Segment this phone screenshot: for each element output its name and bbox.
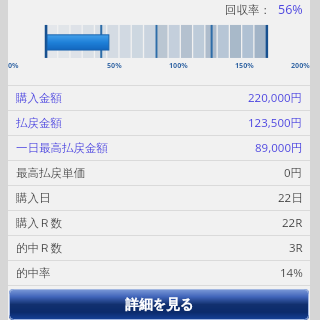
staticText: 220,000円: [248, 90, 303, 106]
button[interactable]: 払戻金額: [8, 111, 310, 135]
staticText: 89,000円: [255, 140, 303, 156]
staticText: 0円: [284, 165, 303, 181]
staticText: 50%: [107, 60, 122, 70]
staticText: 払戻金額: [16, 116, 62, 130]
staticText: 詳細を見る: [125, 296, 194, 313]
button[interactable]: 最高払戻単価: [8, 161, 310, 185]
staticText: 回収率：: [225, 3, 271, 17]
staticText: 最高払戻単価: [16, 166, 85, 180]
button[interactable]: 一日最高払戻金額: [8, 136, 310, 160]
staticText: 購入日: [16, 191, 51, 205]
staticText: 22R: [282, 215, 303, 231]
staticText: 一日最高払戻金額: [16, 141, 108, 155]
button[interactable]: 購入Ｒ数: [8, 211, 310, 235]
staticText: 150%: [235, 60, 254, 70]
staticText: 14%: [280, 265, 303, 281]
staticText: 3R: [289, 240, 303, 256]
staticText: 的中Ｒ数: [16, 241, 62, 255]
button[interactable]: 的中Ｒ数: [8, 236, 310, 260]
staticText: 22日: [278, 190, 303, 206]
button[interactable]: 購入日: [8, 186, 310, 210]
staticText: 100%: [169, 60, 188, 70]
button[interactable]: 購入金額: [8, 86, 310, 110]
staticText: 56%: [278, 1, 303, 18]
staticText: 0%: [8, 60, 19, 70]
staticText: 200%: [291, 60, 310, 70]
staticText: 的中率: [16, 266, 51, 280]
staticText: 購入Ｒ数: [16, 216, 62, 230]
staticText: 123,500円: [248, 115, 303, 131]
button[interactable]: 詳細を見る: [9, 289, 309, 320]
staticText: 購入金額: [16, 91, 62, 105]
button[interactable]: 的中率: [8, 261, 310, 285]
